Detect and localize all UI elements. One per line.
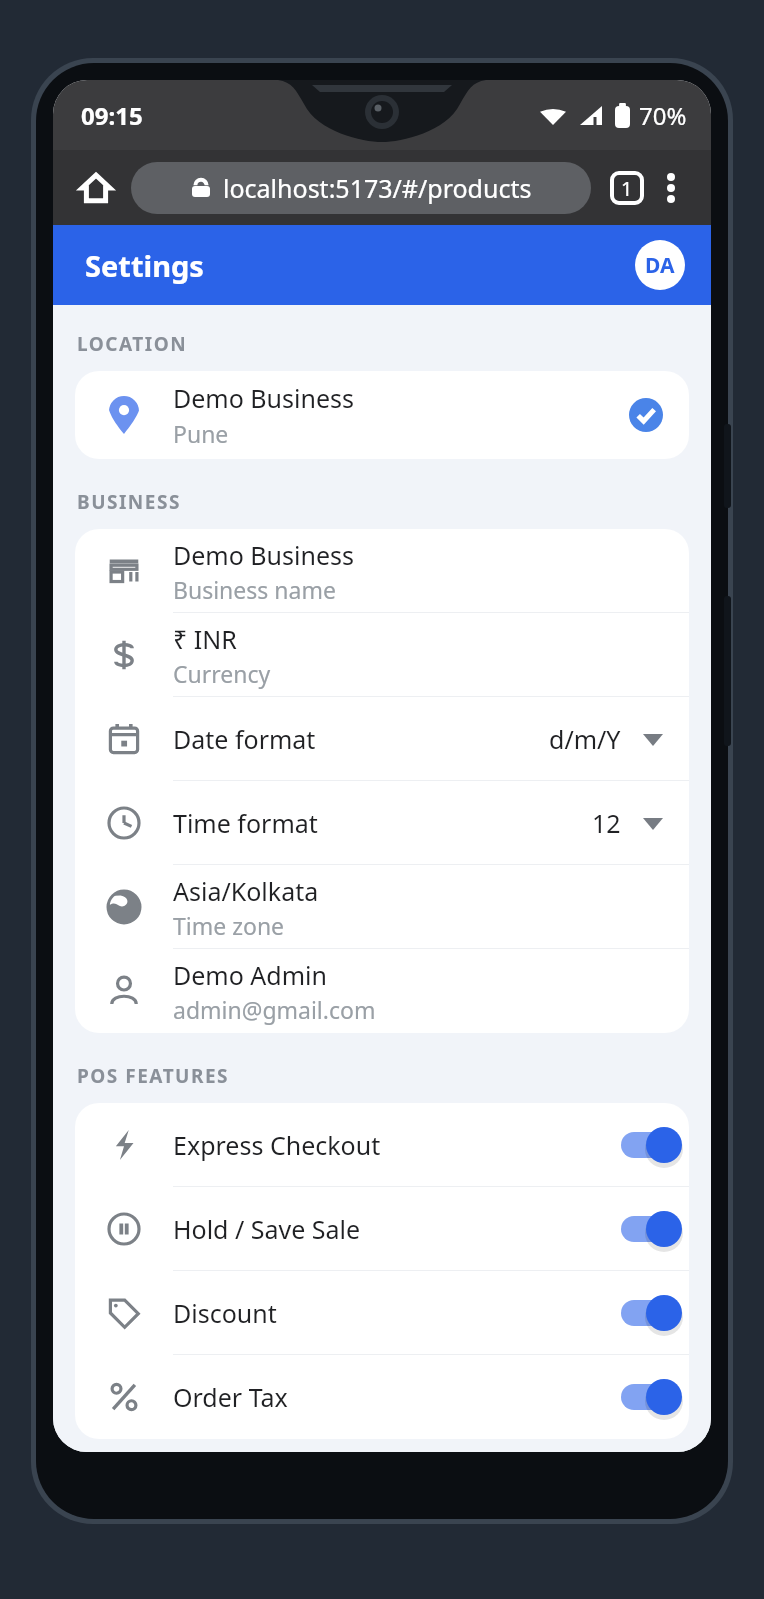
staticText: Date format bbox=[173, 722, 549, 756]
staticText: Hold / Save Sale bbox=[173, 1212, 621, 1246]
staticText: Currency bbox=[173, 658, 271, 689]
staticText: Time format bbox=[173, 806, 592, 840]
staticText: DA bbox=[645, 251, 675, 280]
staticText: admin@gmail.com bbox=[173, 994, 376, 1025]
button[interactable]: Demo Business bbox=[75, 371, 689, 459]
button[interactable]: Account bbox=[635, 240, 685, 290]
staticText: 09:15 bbox=[81, 99, 143, 132]
staticText: Demo Admin bbox=[173, 958, 327, 992]
button[interactable]: Demo Admin bbox=[75, 949, 689, 1033]
button[interactable]: More options bbox=[651, 168, 691, 208]
staticText: 12 bbox=[592, 806, 621, 840]
staticText: Order Tax bbox=[173, 1380, 621, 1414]
staticText: localhost:5173/#/products bbox=[223, 171, 532, 205]
button[interactable]: ₹ INR bbox=[75, 613, 689, 697]
staticText: Demo Business bbox=[173, 381, 354, 415]
button[interactable]: Home bbox=[73, 165, 119, 211]
button[interactable]: Order Tax bbox=[75, 1355, 689, 1439]
button[interactable]: Tabs bbox=[603, 164, 651, 212]
staticText: Express Checkout bbox=[173, 1128, 621, 1162]
button[interactable]: Express Checkout bbox=[75, 1103, 689, 1187]
staticText: Business name bbox=[173, 574, 336, 605]
staticText: ₹ INR bbox=[173, 622, 237, 656]
staticText: Time zone bbox=[173, 910, 285, 941]
button[interactable]: Asia/Kolkata bbox=[75, 865, 689, 949]
staticText: 1 bbox=[621, 175, 633, 202]
staticText: Discount bbox=[173, 1296, 621, 1330]
button[interactable]: Time format bbox=[75, 781, 689, 865]
staticText: 70% bbox=[639, 99, 687, 132]
staticText: Demo Business bbox=[173, 538, 354, 572]
staticText: POS FEATURES bbox=[77, 1063, 230, 1089]
staticText: BUSINESS bbox=[77, 489, 181, 515]
button[interactable]: Hold / Save Sale bbox=[75, 1187, 689, 1271]
button[interactable]: Discount bbox=[75, 1271, 689, 1355]
staticText: Settings bbox=[85, 246, 204, 285]
staticText: d/m/Y bbox=[549, 722, 621, 756]
button[interactable]: Demo Business bbox=[75, 529, 689, 613]
staticText: LOCATION bbox=[77, 331, 188, 357]
staticText: Pune bbox=[173, 418, 229, 449]
staticText: Asia/Kolkata bbox=[173, 874, 319, 908]
button[interactable]: localhost:5173/#/products bbox=[131, 162, 591, 214]
button[interactable]: Date format bbox=[75, 697, 689, 781]
